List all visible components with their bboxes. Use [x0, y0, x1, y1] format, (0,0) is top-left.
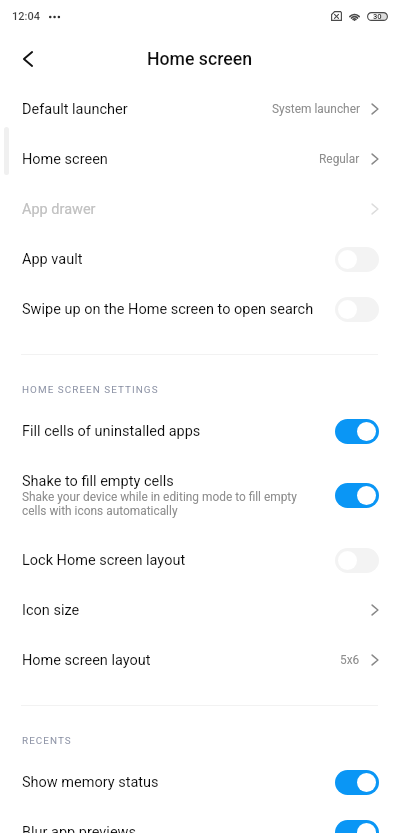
button[interactable]: App drawer: [0, 184, 400, 234]
button[interactable]: Toggle: [335, 770, 379, 795]
button[interactable]: Shake to fill empty cells: [0, 456, 400, 535]
staticText: Blur app previews: [22, 824, 136, 833]
button[interactable]: Toggle: [335, 247, 379, 272]
staticText: Swipe up on the Home screen to open sear…: [22, 301, 314, 318]
button[interactable]: Icon size: [0, 585, 400, 635]
staticText: Fill cells of uninstalled apps: [22, 423, 201, 440]
staticText: Regular: [319, 152, 360, 166]
button[interactable]: Default launcher: [0, 84, 400, 134]
staticText: Shake to fill empty cells: [22, 473, 174, 490]
button[interactable]: Blur app previews: [0, 807, 400, 833]
staticText: Default launcher: [22, 101, 128, 118]
button[interactable]: App vault: [0, 234, 400, 284]
button[interactable]: Lock Home screen layout: [0, 535, 400, 585]
button[interactable]: Fill cells of uninstalled apps: [0, 406, 400, 456]
button[interactable]: Back: [0, 35, 48, 83]
staticText: 30: [373, 12, 382, 21]
staticText: App drawer: [22, 201, 96, 218]
button[interactable]: Toggle: [335, 419, 379, 444]
staticText: Home screen: [22, 151, 108, 168]
staticText: 5x6: [340, 653, 360, 667]
button[interactable]: Toggle: [335, 297, 379, 322]
button[interactable]: Toggle: [335, 548, 379, 573]
staticText: System launcher: [272, 102, 360, 116]
button[interactable]: Toggle: [335, 820, 379, 833]
staticText: App vault: [22, 251, 83, 268]
button[interactable]: Swipe up on the Home screen to open sear…: [0, 284, 400, 334]
staticText: 12:04: [12, 10, 40, 23]
button[interactable]: Toggle: [335, 483, 379, 508]
staticText: Lock Home screen layout: [22, 552, 186, 569]
staticText: Show memory status: [22, 774, 159, 791]
button[interactable]: Show memory status: [0, 757, 400, 807]
staticText: Shake your device while in editing mode …: [22, 490, 314, 518]
staticText: Home screen layout: [22, 652, 151, 669]
staticText: Icon size: [22, 602, 80, 619]
staticText: HOME SCREEN SETTINGS: [22, 384, 159, 396]
staticText: RECENTS: [22, 735, 72, 747]
button[interactable]: Home screen layout: [0, 635, 400, 685]
button[interactable]: Home screen: [0, 134, 400, 184]
staticText: Home screen: [147, 49, 253, 70]
